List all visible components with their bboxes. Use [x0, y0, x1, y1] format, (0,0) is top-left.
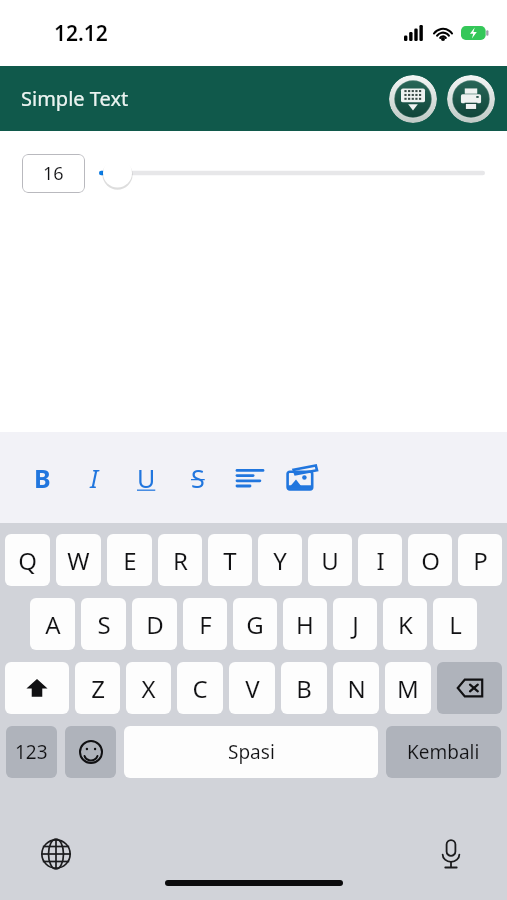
button[interactable]: Hide keyboard [389, 75, 437, 123]
button[interactable]: Emoji [65, 726, 116, 778]
button[interactable]: B [16, 452, 68, 504]
button[interactable]: U [120, 452, 172, 504]
staticText: H [296, 608, 314, 641]
button[interactable]: W [56, 534, 101, 586]
staticText: J [352, 608, 359, 641]
staticText: S [97, 608, 111, 641]
button[interactable]: 16 [22, 154, 85, 193]
staticText: 12.12 [54, 19, 108, 48]
staticText: U [321, 544, 339, 577]
button[interactable]: V [229, 662, 275, 714]
staticText: I [376, 544, 385, 577]
staticText: X [141, 672, 156, 705]
button[interactable]: N [333, 662, 379, 714]
staticText: V [245, 672, 260, 705]
button[interactable]: C [177, 662, 223, 714]
staticText: Spasi [228, 739, 275, 765]
button[interactable]: K [383, 598, 427, 650]
staticText: G [246, 608, 264, 641]
button[interactable]: D [132, 598, 177, 650]
button[interactable]: U [308, 534, 352, 586]
staticText: O [421, 544, 440, 577]
button[interactable]: Change language [36, 834, 76, 874]
button[interactable]: P [458, 534, 502, 586]
button[interactable]: O [408, 534, 452, 586]
button[interactable]: B [281, 662, 327, 714]
staticText: K [398, 608, 413, 641]
staticText: A [45, 608, 61, 641]
button[interactable]: Shift [5, 662, 69, 714]
staticText: Y [273, 544, 287, 577]
button[interactable] [99, 153, 485, 193]
button[interactable]: Dictation [431, 834, 471, 874]
button[interactable]: H [283, 598, 327, 650]
button[interactable]: Backspace [437, 662, 502, 714]
button[interactable]: 123 [6, 726, 57, 778]
staticText: Kembali [407, 739, 480, 765]
staticText: 123 [15, 739, 48, 765]
button[interactable]: Kembali [386, 726, 501, 778]
staticText: D [146, 608, 164, 641]
staticText: W [67, 544, 90, 577]
button[interactable]: Spasi [124, 726, 378, 778]
button[interactable]: Z [75, 662, 120, 714]
staticText: E [123, 544, 137, 577]
button[interactable]: Q [5, 534, 50, 586]
button[interactable]: Y [258, 534, 302, 586]
staticText: T [223, 544, 237, 577]
button[interactable]: S [172, 452, 224, 504]
button[interactable]: S [81, 598, 126, 650]
button[interactable]: E [107, 534, 152, 586]
staticText: M [397, 672, 419, 705]
staticText: S [191, 461, 205, 495]
staticText: 16 [43, 161, 64, 186]
button[interactable]: X [126, 662, 171, 714]
button[interactable]: Insert image [276, 452, 328, 504]
staticText: B [296, 672, 312, 705]
button[interactable]: J [333, 598, 377, 650]
staticText: F [199, 608, 212, 641]
button[interactable]: T [208, 534, 252, 586]
button[interactable]: F [183, 598, 227, 650]
button[interactable]: Align left [224, 452, 276, 504]
button[interactable]: G [233, 598, 277, 650]
staticText: L [449, 608, 462, 641]
staticText: B [34, 461, 51, 495]
button[interactable]: I [68, 452, 120, 504]
button[interactable]: L [433, 598, 477, 650]
staticText: Q [18, 544, 37, 577]
staticText: I [90, 461, 99, 495]
button[interactable]: Print [447, 75, 495, 123]
staticText: P [473, 544, 488, 577]
staticText: R [173, 544, 188, 577]
staticText: N [347, 672, 366, 705]
button[interactable]: A [30, 598, 75, 650]
button[interactable]: M [385, 662, 431, 714]
button[interactable]: I [358, 534, 402, 586]
staticText: U [137, 461, 156, 495]
button[interactable]: R [158, 534, 202, 586]
staticText: Simple Text [21, 85, 129, 112]
staticText: Z [91, 672, 105, 705]
staticText: C [192, 672, 208, 705]
